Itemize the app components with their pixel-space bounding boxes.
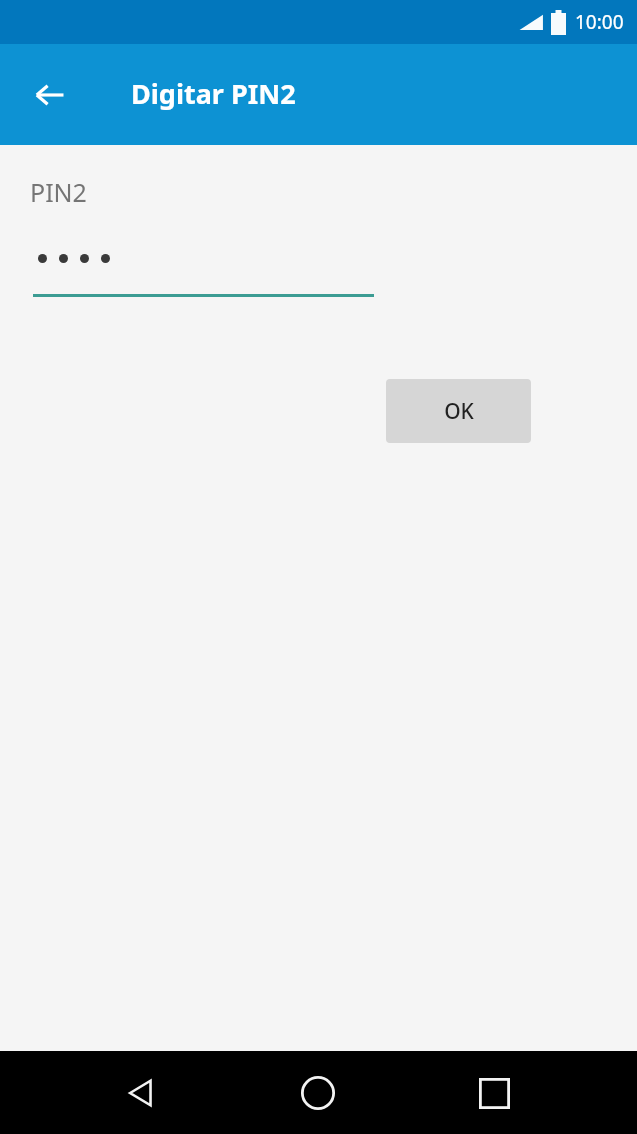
staticText: PIN2 <box>30 175 87 209</box>
button[interactable]: OK <box>386 379 531 443</box>
staticText: OK <box>444 397 474 426</box>
button[interactable]: Back <box>101 1053 181 1133</box>
button[interactable]: Recent apps <box>454 1053 534 1133</box>
button[interactable]: Home <box>278 1053 358 1133</box>
button[interactable]: Back <box>22 67 78 123</box>
button[interactable]: PIN2 entry field <box>33 229 374 297</box>
staticText: Digitar PIN2 <box>131 75 296 112</box>
staticText: 10:00 <box>575 9 624 35</box>
